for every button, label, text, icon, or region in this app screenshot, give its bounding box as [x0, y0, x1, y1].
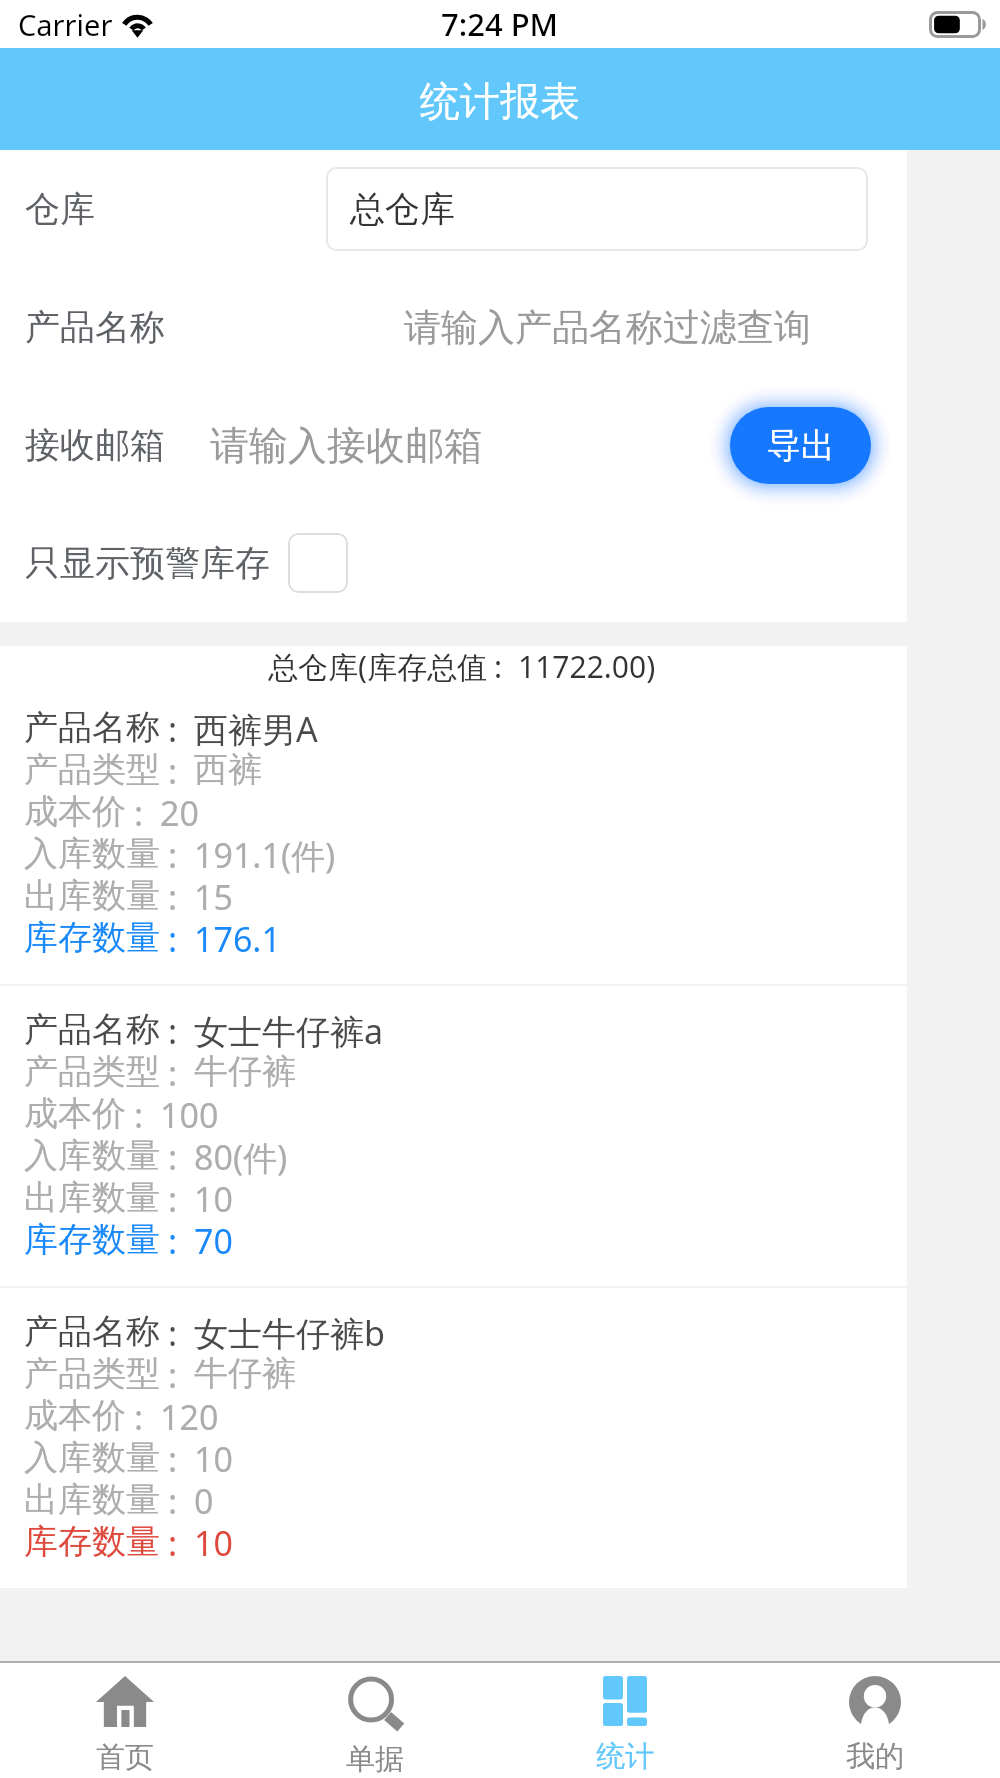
button[interactable]: 产品名称 — [0, 1288, 907, 1588]
staticText: : — [168, 1352, 178, 1394]
staticText: 7:24 PM — [441, 3, 559, 45]
staticText: : — [168, 832, 178, 874]
staticText: 导出 — [767, 424, 835, 467]
staticText: 统计报表 — [420, 76, 580, 126]
staticText: : — [168, 1134, 178, 1176]
staticText: 成本价 — [24, 1394, 126, 1436]
staticText: 牛仔裤 — [194, 1352, 296, 1394]
staticText: 单据 — [346, 1741, 404, 1778]
button[interactable]: Home — [0, 1663, 250, 1778]
button[interactable]: 产品名称 — [0, 684, 907, 984]
staticText: : — [168, 748, 178, 790]
staticText: 100 — [160, 1092, 219, 1134]
button[interactable]: Profile — [750, 1663, 1000, 1778]
staticText: 191.1(件) — [194, 832, 336, 874]
staticText: : — [168, 1478, 178, 1520]
staticText: : — [134, 1092, 144, 1134]
button[interactable]: Documents — [250, 1663, 500, 1778]
staticText: : — [168, 1310, 178, 1352]
staticText: 库存数量 — [24, 1218, 160, 1260]
staticText: 120 — [160, 1394, 219, 1436]
staticText: 总仓库(库存总值 — [268, 646, 487, 684]
staticText: 产品名称 — [24, 706, 160, 748]
staticText: 女士牛仔裤b — [194, 1310, 385, 1352]
staticText: 20 — [160, 790, 199, 832]
staticText: 成本价 — [24, 1092, 126, 1134]
button[interactable]: 导出 — [730, 407, 871, 484]
button[interactable] — [288, 533, 348, 593]
staticText: : — [168, 1218, 178, 1260]
staticText: 出库数量 — [24, 1176, 160, 1218]
staticText: 入库数量 — [24, 832, 160, 874]
staticText: 70 — [194, 1218, 233, 1260]
staticText: 成本价 — [24, 790, 126, 832]
staticText: : — [494, 646, 503, 684]
staticText: 统计 — [596, 1738, 654, 1775]
staticText: 出库数量 — [24, 874, 160, 916]
staticText: 10 — [194, 1436, 233, 1478]
staticText: : — [168, 1008, 178, 1050]
staticText: 11722.00) — [518, 646, 656, 684]
staticText: : — [134, 790, 144, 832]
staticText: 80(件) — [194, 1134, 288, 1176]
staticText: 请输入接收邮箱 — [210, 421, 483, 470]
staticText: : — [168, 1050, 178, 1092]
staticText: 接收邮箱 — [25, 423, 165, 467]
button[interactable]: 总仓库 — [326, 167, 868, 251]
staticText: 产品类型 — [24, 748, 160, 790]
staticText: 产品名称 — [25, 305, 165, 349]
staticText: 产品类型 — [24, 1352, 160, 1394]
staticText: 入库数量 — [24, 1134, 160, 1176]
staticText: 总仓库 — [350, 187, 455, 231]
staticText: 牛仔裤 — [194, 1050, 296, 1092]
staticText: 只显示预警库存 — [25, 541, 270, 585]
staticText: 产品类型 — [24, 1050, 160, 1092]
staticText: 出库数量 — [24, 1478, 160, 1520]
staticText: : — [168, 1436, 178, 1478]
staticText: 入库数量 — [24, 1436, 160, 1478]
staticText: 产品名称 — [24, 1310, 160, 1352]
staticText: 首页 — [96, 1739, 154, 1776]
staticText: : — [168, 1520, 178, 1562]
staticText: 请输入产品名称过滤查询 — [404, 304, 811, 351]
staticText: : — [168, 874, 178, 916]
button[interactable]: 产品名称 — [0, 986, 907, 1286]
staticText: 女士牛仔裤a — [194, 1008, 384, 1050]
staticText: 西裤男A — [194, 706, 318, 748]
staticText: 西裤 — [194, 748, 262, 790]
staticText: 0 — [194, 1478, 214, 1520]
staticText: 10 — [194, 1176, 233, 1218]
staticText: 10 — [194, 1520, 233, 1562]
staticText: 仓库 — [25, 187, 95, 231]
staticText: 库存数量 — [24, 916, 160, 958]
staticText: 我的 — [846, 1738, 904, 1775]
staticText: : — [168, 1176, 178, 1218]
staticText: : — [168, 706, 178, 748]
staticText: Carrier — [18, 5, 113, 44]
staticText: 库存数量 — [24, 1520, 160, 1562]
staticText: 产品名称 — [24, 1008, 160, 1050]
staticText: 176.1 — [194, 916, 281, 958]
button[interactable]: Statistics — [500, 1663, 750, 1778]
staticText: : — [168, 916, 178, 958]
staticText: 15 — [194, 874, 233, 916]
staticText: : — [134, 1394, 144, 1436]
